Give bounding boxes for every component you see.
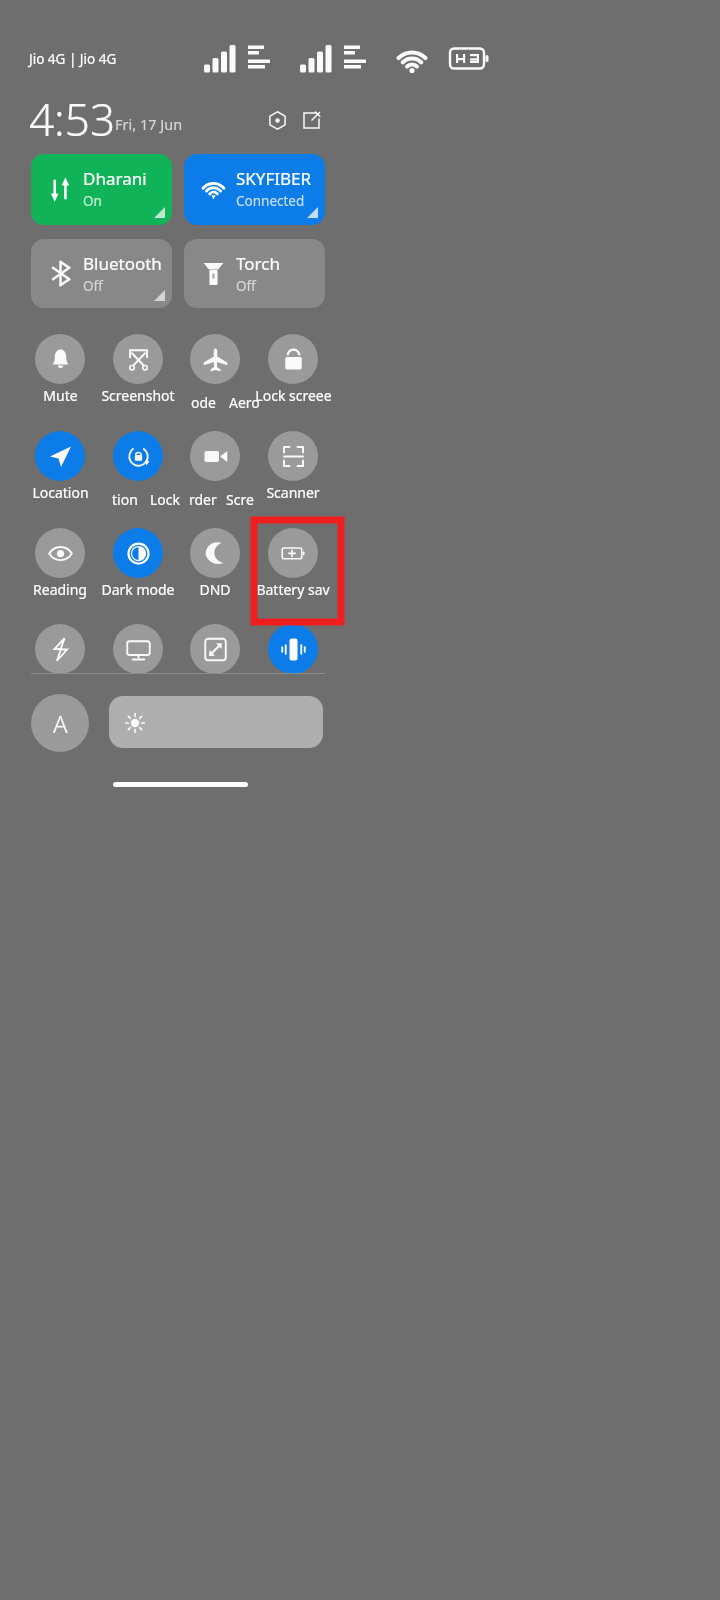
staticText: Lock screee bbox=[255, 386, 332, 405]
button[interactable]: Rotation lock bbox=[113, 431, 163, 481]
staticText: rder bbox=[189, 490, 217, 509]
button[interactable]: Auto brightness bbox=[31, 694, 89, 752]
button[interactable]: Dark mode bbox=[113, 528, 163, 578]
staticText: DND bbox=[199, 580, 231, 599]
staticText: A bbox=[53, 707, 68, 740]
button[interactable]: Settings bbox=[265, 108, 290, 133]
button[interactable]: Aeroplane mode bbox=[190, 334, 240, 384]
button[interactable]: Battery saver bbox=[268, 528, 318, 578]
staticText: SKYFIBER bbox=[236, 167, 312, 190]
staticText: tion bbox=[112, 490, 138, 509]
button[interactable]: SKYFIBER bbox=[184, 154, 325, 225]
staticText: Dharani bbox=[83, 167, 147, 190]
button[interactable]: Location bbox=[35, 431, 85, 481]
button[interactable]: Screen recorder bbox=[190, 431, 240, 481]
staticText: On bbox=[83, 192, 102, 210]
button[interactable]: Flash off bbox=[35, 624, 85, 674]
staticText: Battery sav bbox=[256, 580, 330, 599]
staticText: Screenshot bbox=[101, 386, 175, 405]
staticText: Scanner bbox=[266, 483, 320, 502]
button[interactable]: Brightness bbox=[109, 696, 323, 748]
staticText: ode bbox=[191, 393, 216, 412]
button[interactable]: Resize bbox=[190, 624, 240, 674]
staticText: Mute bbox=[43, 386, 78, 405]
button[interactable]: Vibrate bbox=[268, 624, 318, 674]
staticText: Scre bbox=[226, 490, 254, 509]
staticText: Fri, 17 Jun bbox=[115, 114, 183, 134]
button[interactable]: Bluetooth bbox=[31, 239, 172, 308]
button[interactable]: Lock screen bbox=[268, 334, 318, 384]
staticText: Bluetooth bbox=[83, 252, 162, 275]
staticText: Connected bbox=[236, 192, 305, 210]
staticText: Aero bbox=[229, 393, 260, 412]
staticText: 4:53 bbox=[29, 89, 116, 149]
button[interactable]: Reading mode bbox=[35, 528, 85, 578]
staticText: Reading bbox=[33, 580, 87, 599]
button[interactable]: Mute bbox=[35, 334, 85, 384]
button[interactable]: Scanner bbox=[268, 431, 318, 481]
staticText: Dark mode bbox=[101, 580, 175, 599]
staticText: Off bbox=[236, 277, 256, 295]
button[interactable]: Screenshot bbox=[113, 334, 163, 384]
staticText: Lock bbox=[150, 490, 181, 509]
staticText: Off bbox=[83, 277, 103, 295]
button[interactable]: Edit bbox=[299, 108, 324, 133]
button[interactable]: Dharani bbox=[31, 154, 172, 225]
button[interactable]: Cast bbox=[113, 624, 163, 674]
button[interactable]: Do not disturb bbox=[190, 528, 240, 578]
staticText: Location bbox=[32, 483, 89, 502]
button[interactable]: Torch bbox=[184, 239, 325, 308]
staticText: Torch bbox=[236, 252, 280, 275]
staticText: Jio 4G | Jio 4G bbox=[29, 50, 117, 68]
